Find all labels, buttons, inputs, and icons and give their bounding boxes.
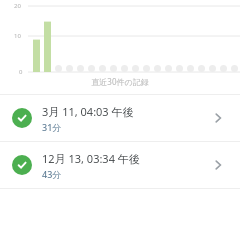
staticText: 0: [19, 68, 23, 76]
button[interactable]: 3月 11, 04:03 午後: [0, 95, 240, 141]
staticText: 12月 13, 03:34 午後: [42, 151, 140, 166]
staticText: 43分: [42, 168, 62, 180]
staticText: 31分: [42, 121, 62, 133]
button[interactable]: 詳細を開く: [208, 155, 228, 175]
staticText: 10: [14, 32, 21, 40]
staticText: 3月 11, 04:03 午後: [42, 104, 134, 119]
button[interactable]: 詳細を開く: [208, 108, 228, 128]
staticText: 20: [14, 2, 21, 10]
staticText: 直近30件の記録: [91, 76, 149, 87]
button[interactable]: 12月 13, 03:34 午後: [0, 142, 240, 188]
